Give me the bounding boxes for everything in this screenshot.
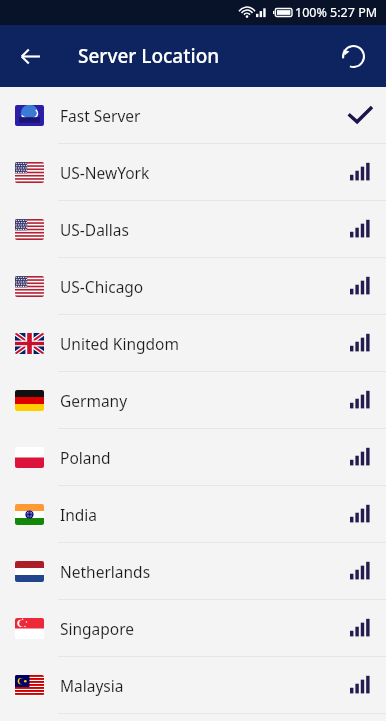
button[interactable]: Germany bbox=[0, 372, 386, 429]
staticText: Singapore bbox=[60, 618, 135, 639]
staticText: US-NewYork bbox=[60, 162, 150, 183]
button[interactable]: US-Dallas bbox=[0, 201, 386, 258]
button[interactable]: Fast Server bbox=[0, 87, 386, 144]
button[interactable]: US-NewYork bbox=[0, 144, 386, 201]
staticText: India bbox=[60, 504, 98, 525]
button[interactable]: Poland bbox=[0, 429, 386, 486]
staticText: US-Chicago bbox=[60, 276, 144, 297]
button[interactable]: India bbox=[0, 486, 386, 543]
staticText: Netherlands bbox=[60, 561, 151, 582]
staticText: Fast Server bbox=[60, 105, 141, 126]
button[interactable]: US-Chicago bbox=[0, 258, 386, 315]
button[interactable]: Back bbox=[8, 34, 52, 78]
button[interactable]: United Kingdom bbox=[0, 315, 386, 372]
button[interactable]: Malaysia bbox=[0, 657, 386, 714]
staticText: Germany bbox=[60, 390, 128, 411]
button[interactable]: Singapore bbox=[0, 600, 386, 657]
staticText: Poland bbox=[60, 447, 111, 468]
staticText: United Kingdom bbox=[60, 333, 179, 354]
staticText: 100% 5:27 PM bbox=[295, 4, 378, 21]
staticText: US-Dallas bbox=[60, 219, 129, 240]
staticText: Malaysia bbox=[60, 675, 124, 696]
staticText: Server Location bbox=[78, 43, 220, 69]
button[interactable]: Netherlands bbox=[0, 543, 386, 600]
button[interactable]: Refresh bbox=[332, 35, 374, 77]
